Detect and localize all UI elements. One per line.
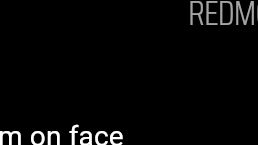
button[interactable]: Media player surface <box>0 0 258 145</box>
staticText: REDMO <box>188 0 258 40</box>
staticText: m on face <box>0 120 124 145</box>
